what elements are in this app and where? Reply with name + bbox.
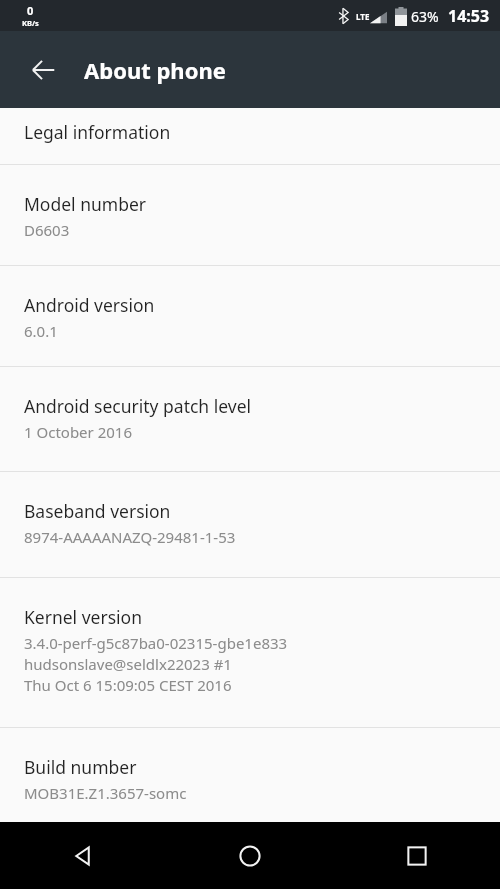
button[interactable]: Baseband version [0,472,500,577]
staticText: Kernel version [24,605,142,629]
button[interactable]: Build number [0,728,500,822]
staticText: KB/s [22,18,39,28]
staticText: Baseband version [24,499,171,523]
button[interactable]: Recent apps [333,822,500,889]
button[interactable]: Legal information [0,108,500,164]
staticText: D6603 [24,220,70,240]
staticText: Model number [24,192,147,216]
button[interactable]: Navigate up [20,47,66,93]
staticText: 1 October 2016 [24,422,132,442]
button[interactable]: Home [166,822,333,889]
staticText: 6.0.1 [24,321,58,341]
staticText: LTE [356,11,370,22]
staticText: About phone [84,55,226,85]
staticText: Thu Oct 6 15:09:05 CEST 2016 [24,675,232,695]
button[interactable]: Android version [0,266,500,366]
button[interactable]: Model number [0,165,500,265]
staticText: MOB31E.Z1.3657-somc [24,783,187,803]
staticText: Android security patch level [24,394,252,418]
staticText: 8974-AAAAANAZQ-29481-1-53 [24,527,236,547]
staticText: hudsonslave@seldlx22023 #1 [24,654,232,674]
button[interactable]: Android security patch level [0,367,500,471]
staticText: 14:53 [448,5,490,27]
staticText: 0 [27,3,34,18]
staticText: 63% [411,7,439,26]
button[interactable]: Back [0,822,166,889]
button[interactable]: Kernel version [0,578,500,727]
staticText: Android version [24,293,155,317]
staticText: Build number [24,755,137,779]
staticText: Legal information [24,120,171,144]
staticText: 3.4.0-perf-g5c87ba0-02315-gbe1e833 [24,633,288,653]
